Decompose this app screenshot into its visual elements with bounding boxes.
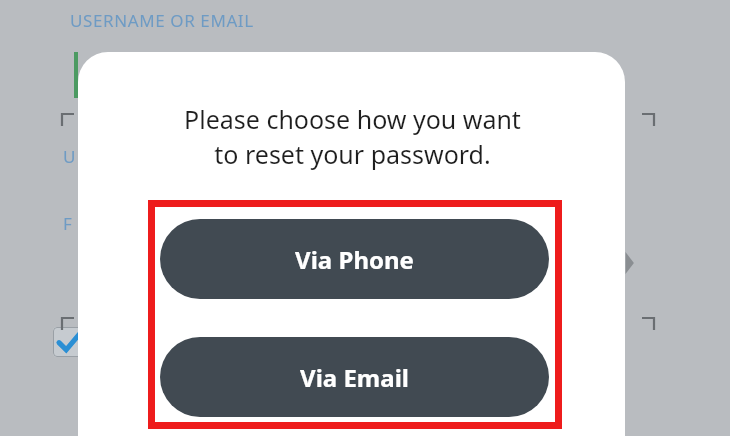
button[interactable]: Via Email — [160, 337, 549, 417]
staticText: Via Phone — [295, 243, 414, 276]
staticText: Via Email — [300, 361, 409, 394]
staticText: U — [63, 145, 76, 168]
button[interactable]: Remember me checkbox — [53, 327, 83, 357]
button[interactable]: Via Phone — [160, 219, 549, 299]
staticText: USERNAME OR EMAIL — [70, 9, 254, 32]
staticText: Please choose how you want to reset your… — [184, 102, 521, 172]
staticText: F — [63, 212, 72, 235]
